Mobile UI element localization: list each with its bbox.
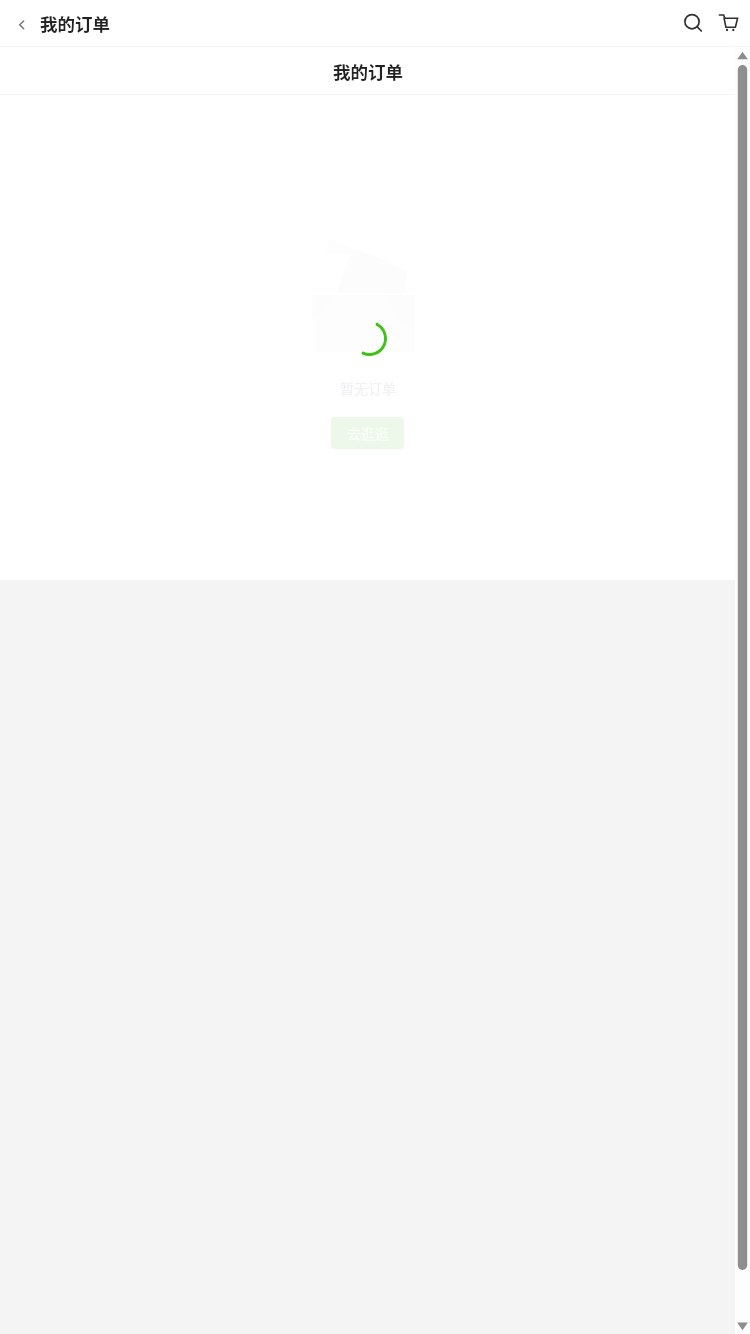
button[interactable]: 去逛逛 [331, 417, 404, 449]
button[interactable]: Shopping cart [710, 0, 747, 45]
staticText: 我的订单 [333, 59, 403, 84]
button[interactable]: Back [0, 0, 40, 47]
button[interactable]: Search [672, 0, 710, 45]
staticText: 去逛逛 [347, 423, 389, 443]
staticText: 暂无订单 [340, 378, 396, 398]
staticText: 我的订单 [40, 11, 110, 36]
button[interactable]: Scroll bar [735, 0, 750, 1334]
